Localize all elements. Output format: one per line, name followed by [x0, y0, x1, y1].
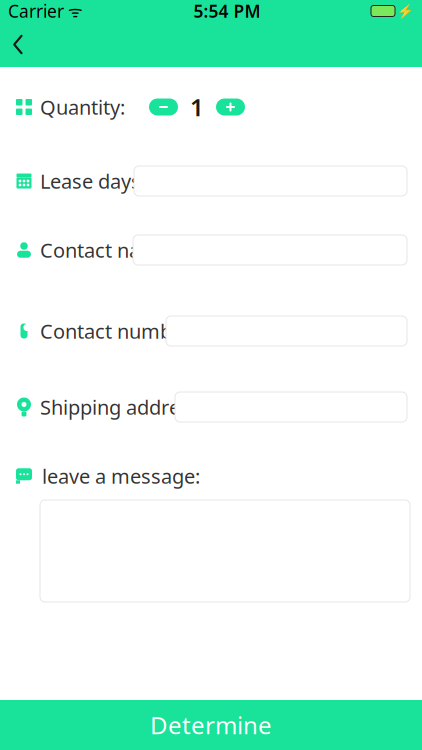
button[interactable]: Contact name	[133, 235, 407, 265]
button[interactable]: Decrease quantity	[149, 98, 178, 115]
staticText: Carrier	[8, 0, 64, 22]
staticText: Quantity:	[40, 94, 125, 120]
staticText: leave a message:	[42, 463, 200, 489]
staticText: Determine	[150, 709, 272, 741]
staticText: 1	[190, 91, 204, 123]
button[interactable]: Shipping address:	[175, 392, 407, 422]
staticText: ᯤ	[64, 0, 83, 22]
staticText: Lease days:	[40, 168, 146, 194]
staticText: Shipping address:	[40, 394, 205, 420]
staticText: 5:54 PM	[193, 0, 260, 22]
button[interactable]: Increase quantity	[216, 98, 245, 115]
staticText: Contact name	[40, 237, 170, 263]
button[interactable]: Lease days:	[134, 166, 407, 196]
button[interactable]: Determine	[0, 700, 422, 750]
button[interactable]: Contact number:	[166, 316, 407, 346]
staticText: ⚡	[397, 3, 414, 19]
staticText: Contact number:	[40, 318, 196, 344]
button[interactable]: Back	[0, 22, 28, 66]
